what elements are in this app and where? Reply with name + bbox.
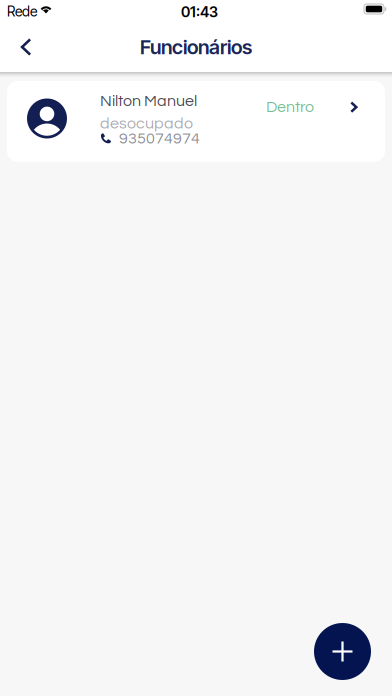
- staticText: Rede: [7, 3, 37, 20]
- button[interactable]: Add: [314, 623, 371, 680]
- button[interactable]: Back: [6, 25, 46, 69]
- staticText: Nilton Manuel: [100, 93, 197, 109]
- staticText: desocupado: [100, 115, 193, 132]
- button[interactable]: Nilton Manuel: [7, 81, 385, 162]
- staticText: 01:43: [181, 3, 218, 21]
- staticText: 935074974: [119, 130, 200, 147]
- staticText: Funcionários: [140, 35, 252, 59]
- staticText: Dentro: [266, 99, 314, 115]
